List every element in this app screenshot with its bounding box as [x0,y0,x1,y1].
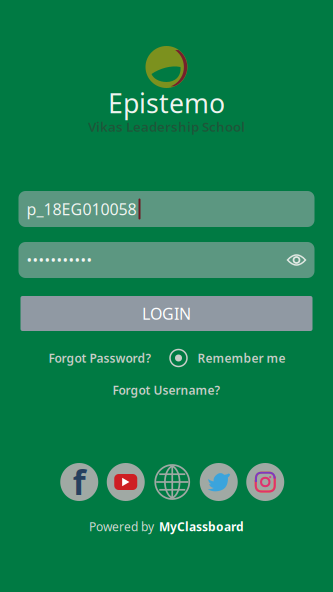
staticText: Forgot Password? [48,350,151,366]
button[interactable]: YouTube [103,459,149,505]
button[interactable]: Instagram [242,459,288,505]
staticText: MyClassboard [159,518,244,534]
staticText: f [73,460,86,504]
button[interactable]: Forgot Username? [110,382,222,398]
button[interactable]: Website [149,459,195,505]
staticText: p_18EG010058 [26,198,136,220]
staticText: Forgot Username? [112,382,220,398]
staticText: Vikas Leadership School [88,118,245,135]
button[interactable]: Forgot Password? [46,349,153,367]
button[interactable]: Facebook [56,459,102,505]
button[interactable]: Twitter [196,459,242,505]
button[interactable]: Remember me [169,349,286,367]
staticText: Powered by [89,518,154,534]
staticText: Epistemo [108,85,225,121]
button[interactable]: Show password [286,252,306,268]
staticText: Remember me [197,350,285,366]
staticText: ••••••••••• [26,250,92,270]
button[interactable]: LOGIN [20,296,312,331]
staticText: LOGIN [142,303,191,324]
